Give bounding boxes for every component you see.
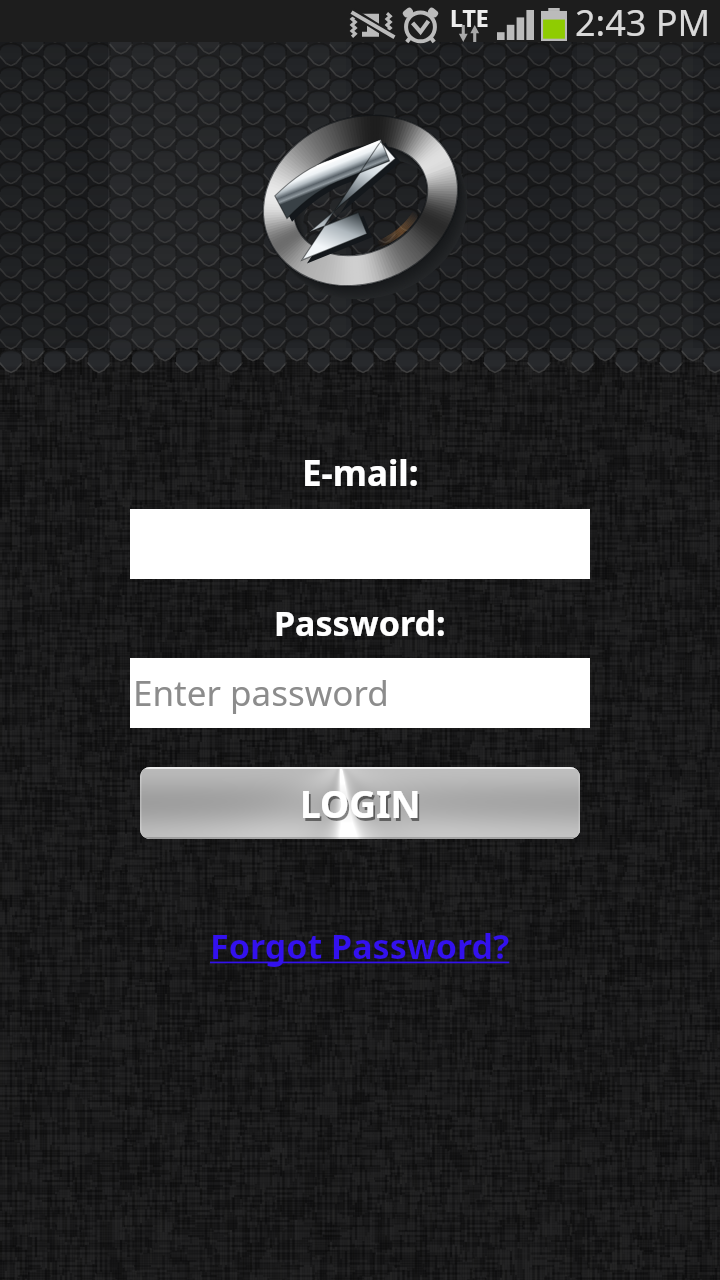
staticText: Password: bbox=[274, 600, 446, 646]
staticText: LTE bbox=[450, 2, 489, 33]
staticText: Enter password bbox=[133, 669, 389, 717]
staticText: LOGIN bbox=[300, 778, 421, 828]
button[interactable]: Enter password bbox=[130, 658, 590, 728]
staticText: E-mail: bbox=[302, 449, 419, 497]
staticText: LOGIN bbox=[302, 781, 423, 831]
button[interactable]: LOGIN bbox=[140, 767, 580, 839]
button[interactable]: Forgot Password? bbox=[210, 923, 510, 969]
staticText: 2:43 PM bbox=[575, 0, 711, 40]
